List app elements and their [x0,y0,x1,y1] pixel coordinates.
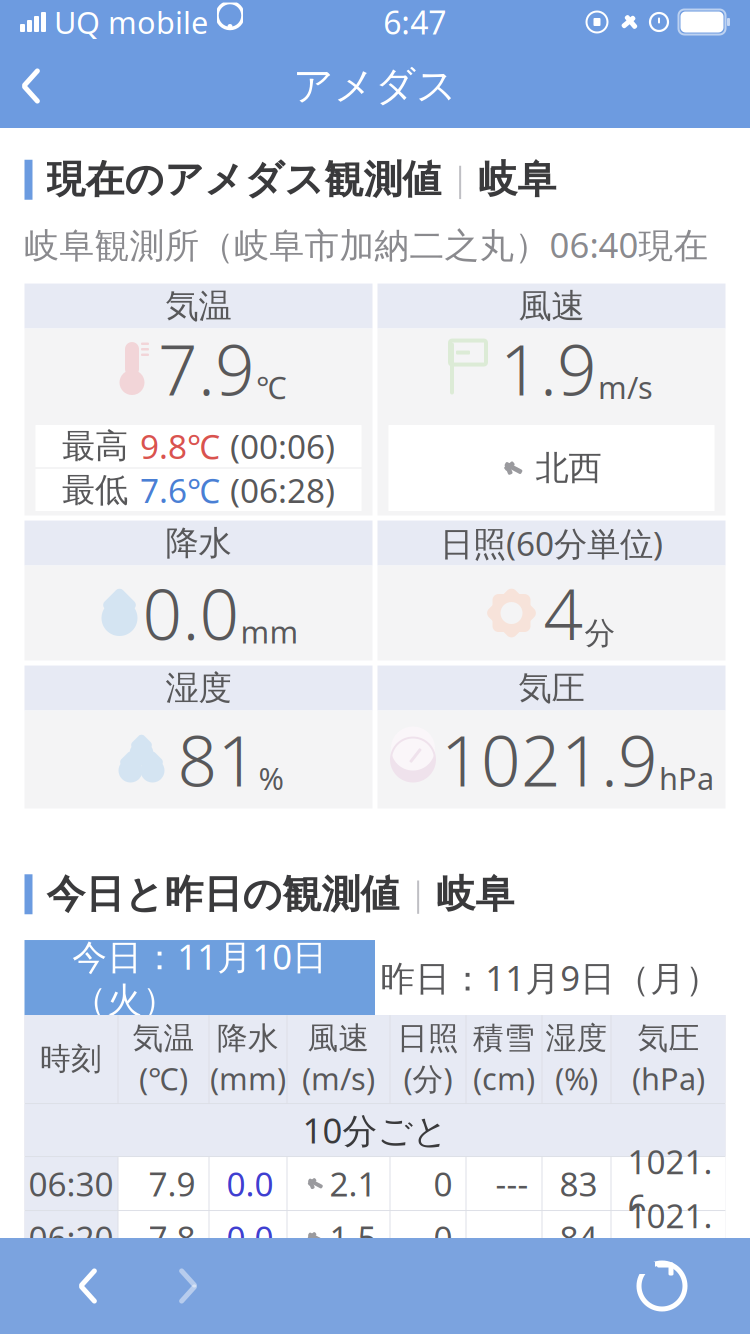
staticText: (hPa) [632,1058,705,1099]
staticText: 7.9 [148,1161,195,1206]
staticText: ｜ [443,159,476,200]
staticText: 最高 [62,426,128,466]
staticText: 降水 [165,523,231,563]
staticText: 現在のアメダス観測値 [46,156,441,203]
staticText: 風速 [518,286,584,326]
staticText: 日照 [397,1019,459,1057]
button[interactable]: 昨日：11月9日（月） [375,940,725,1015]
staticText: (℃) [139,1058,188,1099]
staticText: (06:28) [230,468,335,512]
staticText: ℃ [256,367,287,407]
staticText: (%) [555,1058,598,1099]
staticText: 気圧 [518,668,584,708]
staticText: 今日：11月10日（火） [72,933,327,1022]
staticText: 2.1 [329,1161,376,1206]
staticText: (分) [403,1058,452,1099]
staticText: アメダス [293,61,457,110]
staticText: 0.0 [142,567,239,659]
staticText: 1021.6 [627,1193,712,1282]
staticText: 1.9 [500,322,597,415]
staticText: 0.0 [226,1161,273,1206]
button[interactable]: 前へ [38,1238,138,1334]
staticText: 81 [177,713,257,806]
staticText: (00:06) [230,424,335,468]
staticText: 気温 [165,286,231,326]
staticText: 気圧 [637,1019,699,1057]
staticText: 7.8 [148,1269,195,1314]
staticText: 7.8 [148,1215,195,1260]
staticText: 積雪 [473,1019,535,1057]
staticText: 最低 [62,470,128,510]
staticText: 降水 [217,1019,279,1057]
staticText: hPa [659,758,714,798]
staticText: 06:30 [28,1161,113,1206]
staticText: 今日と昨日の観測値 [46,870,399,918]
staticText: 0.0 [226,1215,273,1260]
staticText: 湿度 [545,1019,607,1057]
staticText: 6:47 [383,1,446,43]
staticText: 岐阜観測所（岐阜市加納二之丸）06:40現在 [24,221,708,267]
staticText: 10分ごと [302,1107,447,1153]
staticText: 時刻 [40,1040,102,1078]
staticText: 1021.9 [441,713,658,806]
staticText: 北西 [535,448,601,488]
staticText: UQ mobile [54,2,208,42]
staticText: 06:20 [28,1215,113,1260]
staticText: 1021.6 [627,1139,712,1228]
staticText: 9.8℃ [140,424,220,468]
staticText: 1021.5 [627,1247,712,1334]
staticText: 分 [584,614,615,652]
staticText: 7.9 [158,322,255,415]
staticText: 7.6℃ [140,468,220,512]
staticText: 風速 [307,1019,369,1057]
staticText: mm [240,611,298,652]
staticText: 1.5 [329,1215,376,1260]
staticText: m/s [598,367,653,407]
staticText: 岐阜 [436,870,514,918]
staticText: 84 [559,1215,597,1260]
staticText: 湿度 [165,668,231,708]
staticText: (cm) [473,1058,535,1099]
button[interactable]: 今日：11月10日（火） [24,940,375,1015]
button[interactable]: 次へ [138,1238,238,1334]
staticText: 0 [433,1215,452,1260]
button[interactable]: 更新 [612,1238,712,1334]
staticText: 日照(60分単位) [440,521,663,565]
staticText: 06:10 [28,1269,113,1314]
staticText: 83 [559,1161,597,1206]
staticText: (mm) [210,1058,286,1099]
staticText: 岐阜 [478,156,556,203]
staticText: 気温 [132,1019,194,1057]
staticText: % [258,758,283,798]
button[interactable]: 戻る [0,54,62,118]
staticText: 昨日：11月9日（月） [380,954,720,1000]
staticText: 4 [543,567,583,659]
staticText: (m/s) [302,1058,375,1099]
staticText: 0 [433,1161,452,1206]
staticText: --- [495,1215,528,1260]
staticText: ｜ [401,874,434,915]
staticText: --- [495,1161,528,1206]
